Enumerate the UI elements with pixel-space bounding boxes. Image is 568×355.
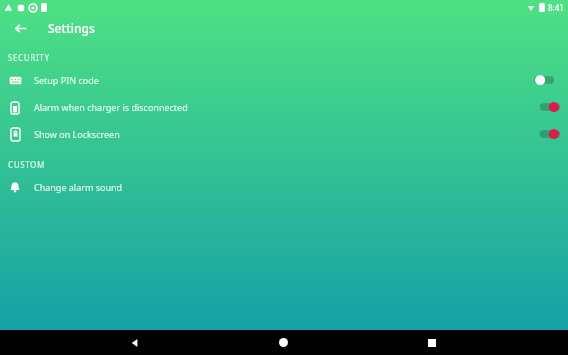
staticText: CUSTOM: [8, 159, 45, 170]
staticText: Setup PIN code: [34, 74, 99, 86]
staticText: Settings: [48, 20, 95, 36]
button[interactable]: Recent apps: [419, 330, 445, 355]
button[interactable]: [534, 99, 560, 115]
button[interactable]: Change alarm sound: [0, 173, 568, 200]
staticText: Alarm when charger is disconnected: [34, 101, 188, 113]
staticText: Show on Lockscreen: [34, 128, 120, 140]
staticText: Change alarm sound: [34, 181, 123, 193]
button[interactable]: Alarm when charger is disconnected: [0, 93, 568, 120]
button[interactable]: Back: [122, 330, 148, 355]
button[interactable]: Setup PIN code: [0, 66, 568, 93]
button[interactable]: [534, 126, 560, 142]
staticText: 8:41: [548, 2, 564, 13]
button[interactable]: [534, 72, 560, 88]
button[interactable]: Back: [8, 16, 32, 40]
button[interactable]: Show on Lockscreen: [0, 120, 568, 147]
staticText: SECURITY: [8, 52, 50, 63]
button[interactable]: Home: [270, 330, 296, 355]
